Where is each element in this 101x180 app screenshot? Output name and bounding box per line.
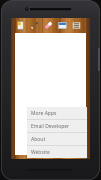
button[interactable]: Eraser xyxy=(43,20,54,31)
staticText: About xyxy=(31,136,46,143)
staticText: Website xyxy=(31,149,50,156)
button[interactable]: More Apps xyxy=(27,107,87,119)
button[interactable]: Pen xyxy=(29,20,40,31)
button[interactable]: Save xyxy=(57,20,68,31)
button[interactable]: Email Developer xyxy=(27,120,87,132)
button[interactable]: About xyxy=(27,133,87,145)
button[interactable]: Website xyxy=(27,146,87,158)
button[interactable] xyxy=(15,33,86,155)
staticText: More Apps xyxy=(31,110,57,117)
button[interactable]: New xyxy=(15,20,26,31)
button[interactable]: Menu xyxy=(71,20,82,31)
staticText: Email Developer xyxy=(31,123,70,130)
